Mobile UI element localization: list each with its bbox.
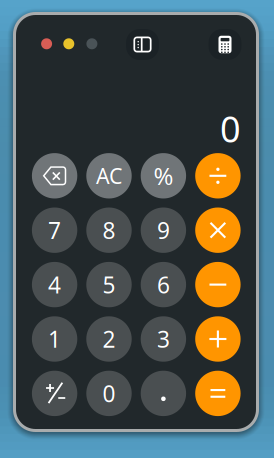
button[interactable]: Calculator mode [208,29,241,60]
button[interactable]: 4 [32,262,77,307]
staticText: 0 [220,105,241,152]
button[interactable]: Decimal point [141,371,186,416]
button[interactable]: 7 [32,207,77,253]
staticText: 4 [48,269,61,300]
button[interactable]: 9 [141,207,186,253]
button[interactable]: % [141,153,186,198]
staticText: 5 [102,269,115,300]
button[interactable]: 3 [141,316,186,362]
button[interactable]: Delete [32,153,77,198]
button[interactable]: Toggle sign [32,371,77,416]
button[interactable]: 8 [86,207,132,253]
button[interactable]: Equals [195,371,241,416]
staticText: 7 [48,215,61,245]
staticText: % [153,160,173,192]
staticText: 2 [102,324,115,354]
staticText: 1 [48,324,61,354]
button[interactable]: 5 [86,262,132,307]
staticText: 6 [157,269,170,300]
button[interactable]: Divide [195,153,241,198]
button[interactable]: Add [195,316,241,362]
staticText: 8 [102,215,115,245]
button[interactable]: 1 [32,316,77,362]
staticText: 0 [102,378,115,408]
staticText: 9 [157,215,170,245]
staticText: AC [96,162,122,190]
button[interactable]: Multiply [195,207,241,253]
button[interactable]: 0 [86,371,132,416]
staticText: 3 [157,324,170,354]
button[interactable]: 2 [86,316,132,362]
button[interactable]: Subtract [195,262,241,307]
button[interactable]: Show sidebar [126,29,159,60]
button[interactable]: AC [86,153,132,198]
button[interactable]: 6 [141,262,186,307]
